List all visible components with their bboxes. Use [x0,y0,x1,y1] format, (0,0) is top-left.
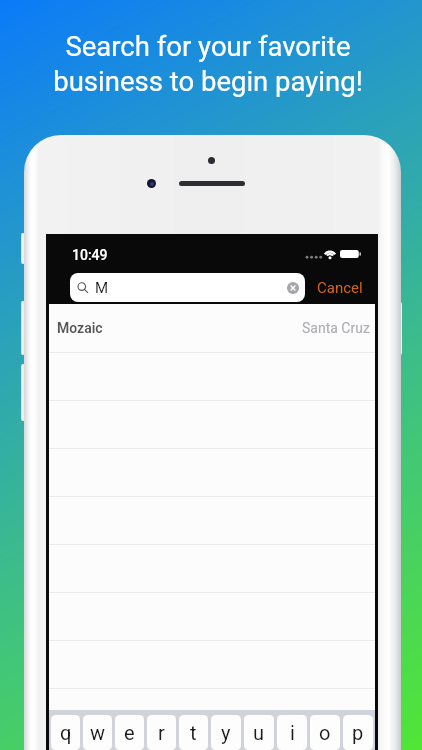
button[interactable]: e [115,715,144,750]
staticText: Cancel [317,279,363,297]
staticText: i [290,721,295,744]
staticText: t [190,721,197,744]
button[interactable]: o [310,715,340,750]
button[interactable]: Mozaic [49,304,375,352]
staticText: y [221,721,231,744]
staticText: q [60,721,72,744]
staticText: u [253,721,265,744]
staticText: e [124,721,135,744]
button[interactable]: r [147,715,176,750]
staticText: Search for your favorite business to beg… [53,30,363,97]
button[interactable]: u [244,715,274,750]
button[interactable]: p [343,715,373,750]
button[interactable]: y [211,715,241,750]
staticText: Mozaic [57,320,103,336]
staticText: 10:49 [72,247,108,263]
staticText: M [95,279,109,297]
button[interactable]: i [277,715,307,750]
staticText: Santa Cruz [302,320,370,336]
staticText: p [352,721,364,744]
staticText: r [158,721,165,744]
button[interactable]: q [51,715,80,750]
button[interactable]: M [70,273,305,302]
button[interactable]: w [83,715,112,750]
button[interactable]: Clear search text [287,282,299,294]
button[interactable]: t [179,715,208,750]
staticText: w [90,721,106,744]
button[interactable]: Cancel [312,275,368,301]
staticText: o [319,721,331,744]
